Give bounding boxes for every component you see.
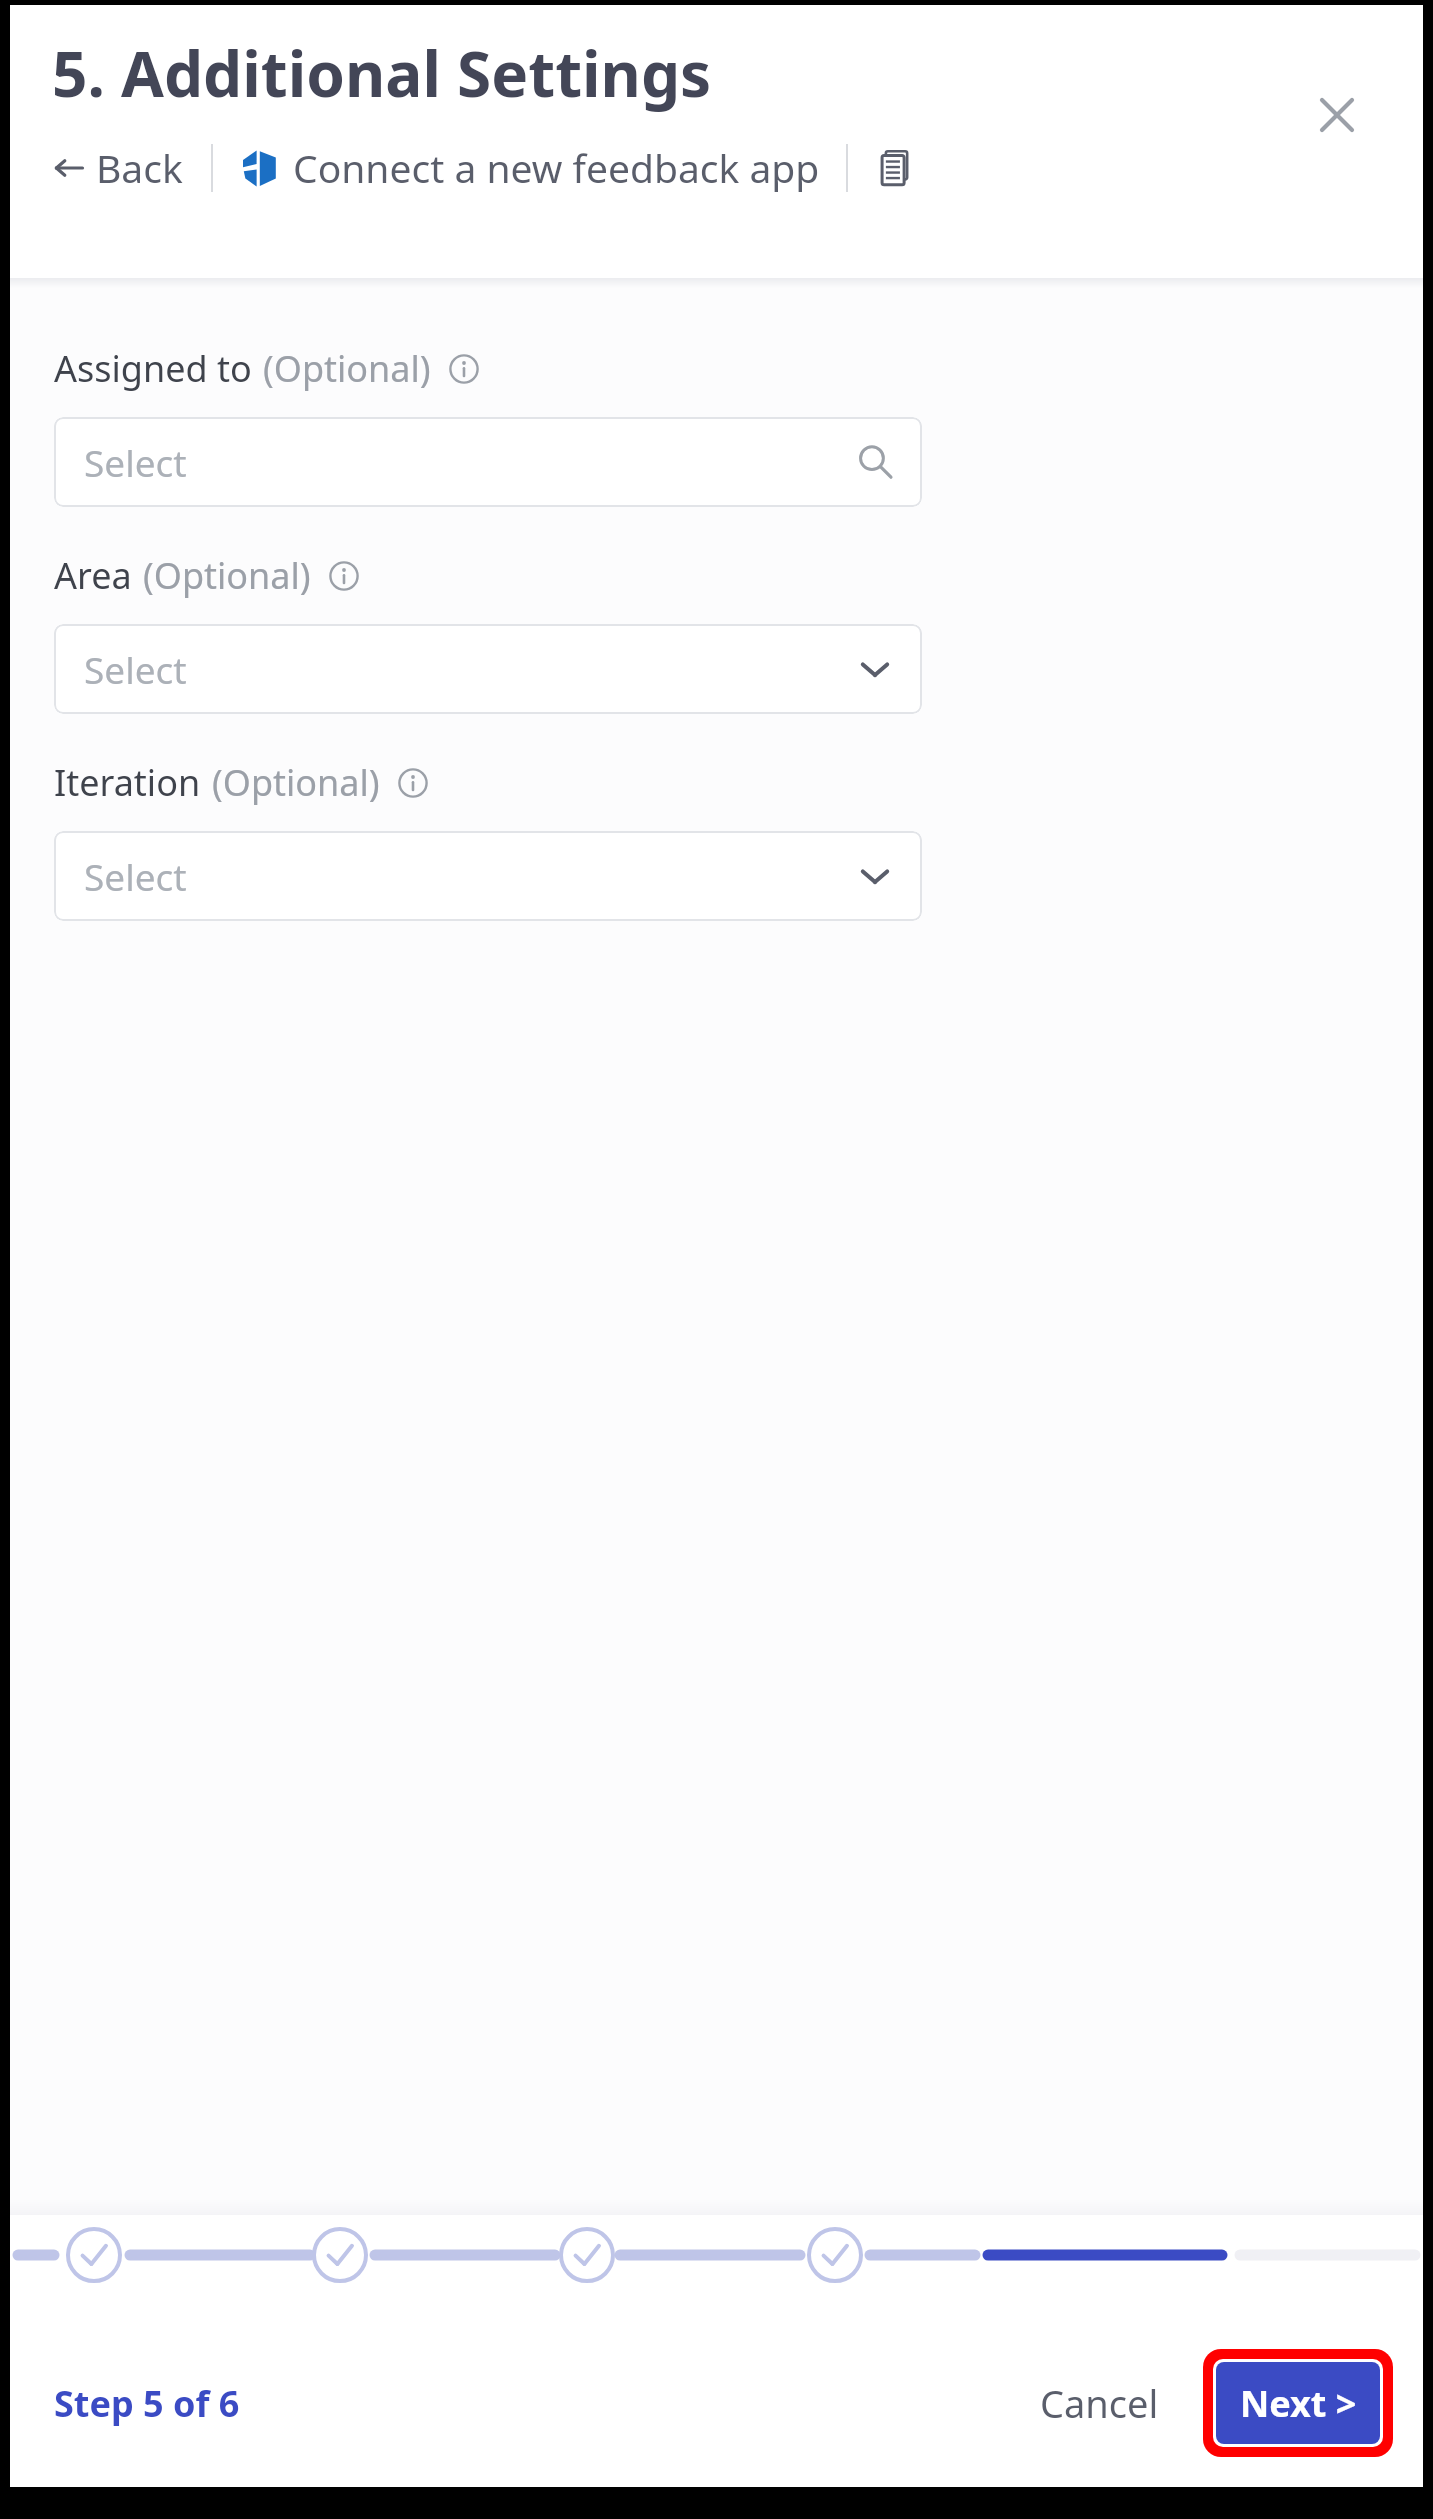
button[interactable]: Notes xyxy=(872,145,918,191)
button[interactable]: Info about Area xyxy=(327,559,361,593)
button[interactable]: Cancel xyxy=(1026,2363,1173,2443)
staticText: Cancel xyxy=(1040,2377,1159,2429)
staticText: (Optional) xyxy=(212,758,380,807)
staticText: Back xyxy=(96,141,183,194)
button[interactable]: Step 5 of 6 xyxy=(54,2369,240,2438)
button[interactable]: Connect a new feedback app xyxy=(239,135,820,200)
button[interactable]: Info about Assigned to xyxy=(447,352,481,386)
staticText: Iteration xyxy=(54,758,201,807)
staticText: 5. Additional Settings xyxy=(52,31,712,115)
staticText: (Optional) xyxy=(143,551,311,600)
button[interactable]: Select xyxy=(54,831,922,921)
button[interactable]: Select xyxy=(54,624,922,714)
staticText: (Optional) xyxy=(263,344,431,393)
staticText: Area xyxy=(54,551,132,600)
staticText: Step 5 of 6 xyxy=(54,2379,240,2428)
button[interactable]: Close xyxy=(1309,87,1365,143)
button[interactable]: Select xyxy=(54,417,922,507)
button[interactable]: Next > xyxy=(1216,2362,1380,2444)
staticText: Select xyxy=(84,437,856,487)
staticText: Next > xyxy=(1240,2379,1357,2428)
button[interactable]: Info about Iteration xyxy=(396,766,430,800)
staticText: Select xyxy=(84,644,856,694)
button[interactable]: Back xyxy=(52,133,185,202)
staticText: Assigned to xyxy=(54,344,252,393)
staticText: Connect a new feedback app xyxy=(293,141,820,194)
staticText: Select xyxy=(84,851,856,901)
